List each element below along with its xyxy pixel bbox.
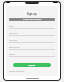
staticText: Create your account xyxy=(23,18,42,21)
button[interactable]: Name xyxy=(9,25,55,32)
button[interactable]: Already a member? xyxy=(9,70,25,72)
staticText: Sign up xyxy=(27,12,37,16)
button[interactable]: Country xyxy=(9,53,55,60)
button[interactable]: First name xyxy=(9,32,55,39)
staticText: Country xyxy=(9,53,53,55)
button[interactable]: Last name xyxy=(9,39,55,46)
staticText: Submit xyxy=(28,64,36,67)
button[interactable]: Create your account xyxy=(9,18,55,21)
staticText: First name xyxy=(9,32,18,34)
staticText: Already a member? xyxy=(9,70,25,72)
staticText: Email address xyxy=(9,46,21,48)
button[interactable]: Submit xyxy=(13,63,51,67)
button[interactable]: Sign up xyxy=(9,12,55,16)
staticText: Last name xyxy=(9,39,18,41)
staticText: Name xyxy=(9,25,14,27)
button[interactable]: Email address xyxy=(9,46,55,53)
